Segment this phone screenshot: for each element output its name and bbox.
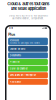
- button[interactable]: Planifier: [8, 59, 48, 65]
- staticText: Plus: [8, 32, 15, 36]
- button[interactable]: Suivi de chantier: [8, 66, 48, 72]
- staticText: Gérez votre activité et vos documents au…: [8, 14, 47, 20]
- staticText: 9:41: [9, 27, 13, 29]
- staticText: Planifier: [10, 60, 20, 63]
- staticText: Suivi de chantier: [10, 67, 28, 70]
- button[interactable]: Mes aides de l'entreprise: [8, 72, 48, 78]
- button[interactable]: Documents: [8, 52, 48, 58]
- button[interactable]: Assistance: [8, 79, 48, 85]
- button[interactable]: Cloud: [8, 38, 48, 45]
- button[interactable]: Journal de bord: [8, 46, 48, 52]
- staticText: Assistance: [10, 80, 21, 83]
- staticText: Journal de bord: [10, 47, 25, 50]
- staticText: Cloud: [10, 39, 19, 42]
- staticText: Stockez et partagez vos fichiers: [10, 42, 40, 44]
- staticText: Cloud & autres tout dans une seule appli…: [7, 1, 49, 11]
- staticText: Mes aides de l'entreprise: [10, 74, 36, 77]
- staticText: Documents: [10, 54, 21, 57]
